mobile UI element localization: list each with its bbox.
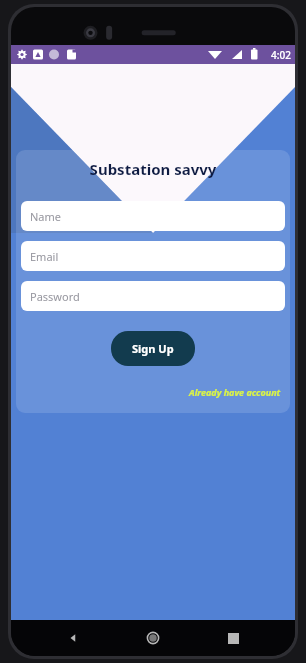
button[interactable]: Home	[135, 620, 171, 656]
button[interactable]: Already have account	[185, 384, 285, 400]
staticText: Already have account	[189, 386, 281, 398]
staticText: Password	[30, 289, 80, 304]
staticText: 4:02	[271, 48, 291, 62]
button[interactable]: Name	[21, 201, 285, 231]
button[interactable]: Sign Up	[111, 331, 195, 366]
staticText: Sign Up	[132, 341, 174, 356]
button[interactable]: Password	[21, 281, 285, 311]
button[interactable]: Email	[21, 241, 285, 271]
staticText: Name	[30, 209, 62, 224]
button[interactable]: Back	[55, 620, 91, 656]
staticText: Email	[30, 249, 59, 264]
button[interactable]: Recent apps	[215, 620, 251, 656]
staticText: Substation savvy	[21, 159, 285, 179]
